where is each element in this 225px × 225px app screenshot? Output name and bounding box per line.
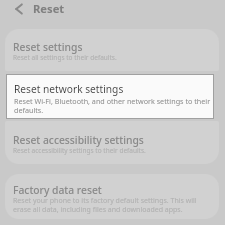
button[interactable]: Back — [11, 1, 27, 17]
staticText: Reset all settings to their defaults. — [13, 53, 209, 62]
staticText: Reset — [33, 1, 65, 16]
staticText: Reset Wi-Fi, Bluetooth, and other networ… — [14, 96, 212, 115]
staticText: Reset accessibility settings — [13, 133, 144, 147]
staticText: Factory data reset — [13, 183, 102, 197]
button[interactable]: Factory data reset — [5, 174, 219, 219]
button[interactable]: Reset settings — [5, 29, 219, 71]
staticText: Reset network settings — [14, 82, 124, 96]
button[interactable]: Reset network settings — [6, 74, 214, 119]
staticText: Reset settings — [13, 40, 83, 54]
button[interactable]: Reset accessibility settings — [5, 121, 219, 164]
staticText: Reset your phone to its factory default … — [13, 196, 203, 214]
staticText: Reset accessibility settings to their de… — [13, 146, 209, 155]
